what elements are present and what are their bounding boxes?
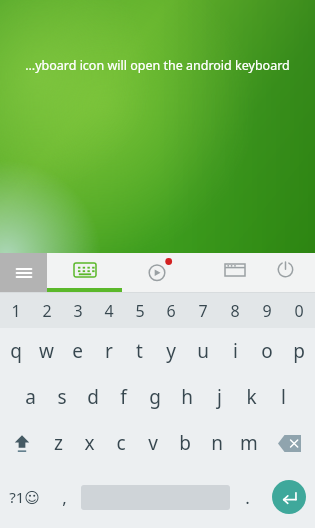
- staticText: g: [149, 384, 161, 410]
- button[interactable]: t: [124, 328, 155, 374]
- staticText: f: [120, 384, 127, 410]
- staticText: h: [181, 384, 193, 410]
- staticText: z: [54, 430, 63, 456]
- button[interactable]: 0: [283, 293, 315, 328]
- staticText: x: [84, 430, 95, 456]
- button[interactable]: n: [201, 420, 233, 466]
- staticText: t: [136, 338, 143, 364]
- button[interactable]: Shift: [0, 420, 43, 466]
- button[interactable]: Keyboard: [47, 253, 122, 292]
- button[interactable]: d: [77, 374, 108, 420]
- button[interactable]: Windows: [197, 253, 272, 292]
- button[interactable]: 8: [219, 293, 251, 328]
- button[interactable]: ?1☺: [0, 466, 49, 528]
- staticText: 9: [262, 300, 272, 322]
- button[interactable]: c: [105, 420, 137, 466]
- button[interactable]: l: [267, 374, 299, 420]
- button[interactable]: q: [0, 328, 31, 374]
- button[interactable]: a: [15, 374, 46, 420]
- staticText: 7: [198, 300, 208, 322]
- button[interactable]: e: [62, 328, 93, 374]
- staticText: w: [39, 338, 54, 364]
- button[interactable]: 5: [124, 293, 155, 328]
- staticText: u: [197, 338, 209, 364]
- staticText: .: [245, 486, 250, 509]
- button[interactable]: Backspace: [265, 420, 315, 466]
- button[interactable]: 2: [31, 293, 62, 328]
- button[interactable]: 4: [93, 293, 124, 328]
- staticText: b: [179, 430, 191, 456]
- button[interactable]: ,: [49, 466, 79, 528]
- staticText: 3: [73, 300, 83, 322]
- button[interactable]: 7: [187, 293, 219, 328]
- staticText: 0: [294, 300, 304, 322]
- staticText: r: [105, 338, 113, 364]
- staticText: v: [148, 430, 158, 456]
- staticText: ,: [62, 486, 67, 509]
- staticText: o: [261, 338, 273, 364]
- staticText: 1: [11, 300, 21, 322]
- button[interactable]: w: [31, 328, 62, 374]
- button[interactable]: o: [251, 328, 283, 374]
- staticText: a: [25, 384, 36, 410]
- button[interactable]: 6: [155, 293, 187, 328]
- button[interactable]: z: [43, 420, 74, 466]
- button[interactable]: h: [171, 374, 203, 420]
- staticText: e: [72, 338, 83, 364]
- button[interactable]: .: [232, 466, 262, 528]
- button[interactable]: 1: [0, 293, 31, 328]
- button[interactable]: r: [93, 328, 124, 374]
- staticText: s: [57, 384, 67, 410]
- staticText: ?1☺: [9, 487, 40, 507]
- button[interactable]: y: [155, 328, 187, 374]
- button[interactable]: g: [139, 374, 171, 420]
- staticText: c: [116, 430, 126, 456]
- staticText: q: [10, 338, 22, 364]
- staticText: k: [246, 384, 257, 410]
- staticText: 6: [166, 300, 176, 322]
- staticText: y: [166, 338, 176, 364]
- staticText: p: [293, 338, 305, 364]
- staticText: 4: [104, 300, 114, 322]
- staticText: i: [233, 338, 238, 364]
- button[interactable]: 3: [62, 293, 93, 328]
- button[interactable]: i: [219, 328, 251, 374]
- staticText: 2: [42, 300, 52, 322]
- button[interactable]: f: [108, 374, 139, 420]
- button[interactable]: Power: [272, 253, 315, 292]
- button[interactable]: j: [203, 374, 235, 420]
- staticText: n: [211, 430, 223, 456]
- staticText: 5: [135, 300, 145, 322]
- staticText: …yboard icon will open the android keybo…: [25, 57, 290, 74]
- button[interactable]: k: [235, 374, 267, 420]
- button[interactable]: p: [283, 328, 315, 374]
- button[interactable]: Play: [122, 253, 197, 292]
- button[interactable]: v: [137, 420, 169, 466]
- button[interactable]: 9: [251, 293, 283, 328]
- button[interactable]: x: [74, 420, 105, 466]
- staticText: m: [240, 430, 258, 456]
- staticText: d: [87, 384, 99, 410]
- staticText: l: [281, 384, 286, 410]
- button[interactable]: m: [233, 420, 265, 466]
- staticText: 8: [230, 300, 240, 322]
- staticText: j: [217, 384, 222, 410]
- button[interactable]: s: [46, 374, 77, 420]
- button[interactable]: Menu: [0, 253, 47, 292]
- button[interactable]: Enter: [272, 480, 306, 514]
- button[interactable]: b: [169, 420, 201, 466]
- button[interactable]: u: [187, 328, 219, 374]
